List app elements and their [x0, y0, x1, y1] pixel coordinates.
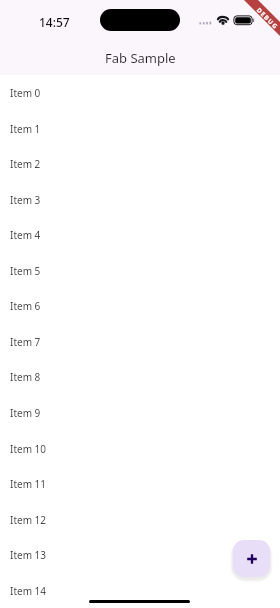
staticText: Item 5 — [10, 264, 41, 278]
staticText: Item 14 — [10, 584, 47, 598]
button[interactable]: Item 2 — [0, 146, 280, 182]
staticText: Item 0 — [10, 86, 41, 100]
staticText: Item 9 — [10, 406, 41, 420]
button[interactable]: Item 11 — [0, 466, 280, 502]
staticText: Item 13 — [10, 548, 47, 562]
button[interactable]: Item 5 — [0, 253, 280, 289]
staticText: Item 12 — [10, 513, 47, 527]
staticText: Item 3 — [10, 193, 41, 207]
button[interactable]: Item 13 — [0, 537, 280, 573]
staticText: Item 7 — [10, 335, 41, 349]
staticText: Item 10 — [10, 442, 47, 456]
button[interactable]: Item 6 — [0, 288, 280, 324]
staticText: Item 8 — [10, 370, 41, 384]
staticText: Item 1 — [10, 122, 41, 136]
staticText: Fab Sample — [105, 49, 176, 67]
button[interactable]: Item 7 — [0, 324, 280, 360]
staticText: DEBUG — [255, 5, 280, 31]
button[interactable]: Item 8 — [0, 359, 280, 395]
button[interactable]: Item 9 — [0, 395, 280, 431]
staticText: Item 4 — [10, 228, 41, 242]
staticText: 14:57 — [39, 14, 70, 30]
staticText: Item 2 — [10, 157, 41, 171]
button[interactable]: Add — [233, 540, 270, 577]
button[interactable]: Item 12 — [0, 502, 280, 538]
staticText: Item 6 — [10, 299, 41, 313]
button[interactable]: Item 3 — [0, 182, 280, 218]
button[interactable]: Item 1 — [0, 111, 280, 147]
button[interactable]: Item 14 — [0, 573, 280, 608]
button[interactable]: Item 4 — [0, 217, 280, 253]
staticText: Item 11 — [10, 477, 47, 491]
button[interactable]: Item 10 — [0, 431, 280, 467]
button[interactable]: Item 0 — [0, 75, 280, 111]
